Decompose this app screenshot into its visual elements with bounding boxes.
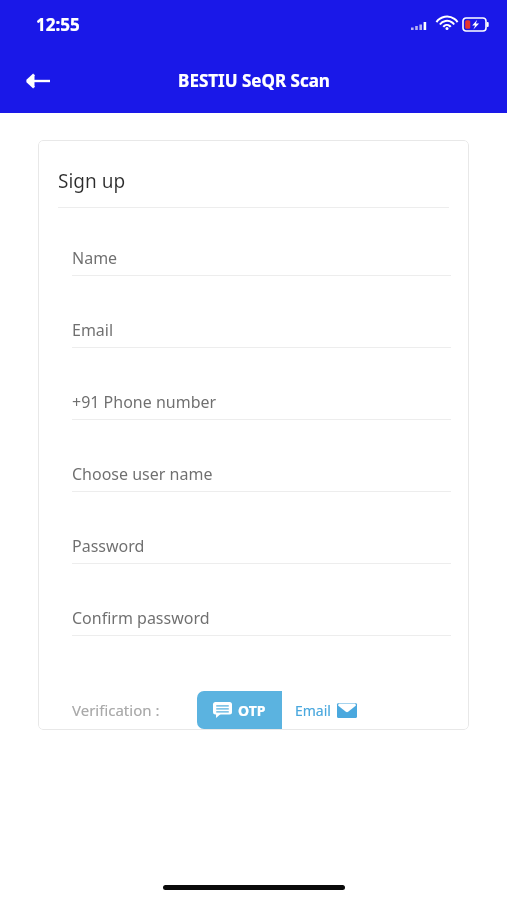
staticText: Confirm password [72, 607, 210, 629]
button[interactable]: OTP [197, 691, 282, 729]
staticText: 12:55 [36, 13, 80, 36]
staticText: Name [72, 247, 118, 269]
button[interactable]: Choose user name [72, 463, 451, 535]
button[interactable]: Name [72, 247, 451, 319]
staticText: Sign up [58, 168, 126, 194]
staticText: +91 Phone number [72, 391, 217, 413]
button[interactable]: +91 Phone number [72, 391, 451, 463]
staticText: Password [72, 535, 145, 557]
staticText: OTP [238, 701, 266, 720]
button[interactable]: Email [282, 691, 369, 729]
button[interactable]: Email [72, 319, 451, 391]
staticText: Verification : [72, 700, 160, 720]
staticText: Email [72, 319, 114, 341]
staticText: BESTIU SeQR Scan [178, 69, 330, 92]
staticText: Choose user name [72, 463, 213, 485]
staticText: Email [295, 701, 331, 720]
button[interactable]: Confirm password [72, 607, 451, 679]
button[interactable]: Password [72, 535, 451, 607]
button[interactable]: Back [16, 59, 60, 103]
